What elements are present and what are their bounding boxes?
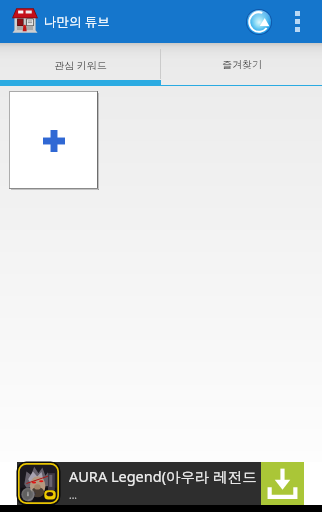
button[interactable]: Install xyxy=(261,462,304,505)
staticText: AURA Legend(아우라 레전드 xyxy=(69,466,257,486)
staticText: ... xyxy=(69,488,78,502)
button[interactable]: AURA Legend(아우라 레전드 xyxy=(17,462,304,505)
button[interactable]: Refresh xyxy=(232,0,285,43)
staticText: 즐겨찾기 xyxy=(222,58,262,71)
button[interactable]: 관심 키워드 xyxy=(0,43,160,86)
button[interactable]: Add keyword xyxy=(9,91,99,190)
button[interactable]: 즐겨찾기 xyxy=(161,43,322,86)
staticText: 관심 키워드 xyxy=(54,58,107,72)
staticText: 나만의 튜브 xyxy=(44,13,110,30)
button[interactable]: More options xyxy=(285,0,310,43)
